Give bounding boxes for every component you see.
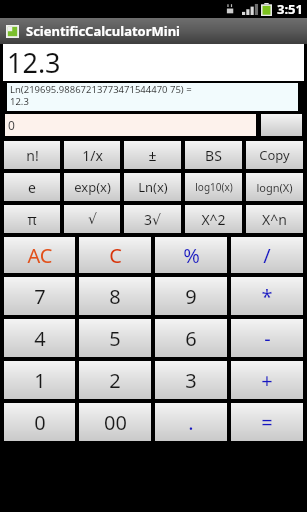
button[interactable]: + [231, 361, 303, 399]
button[interactable]: 00 [79, 403, 151, 441]
staticText: log10(x) [195, 180, 233, 194]
staticText: 1/x [82, 146, 103, 165]
button[interactable]: - [231, 319, 303, 357]
staticText: √ [88, 211, 97, 227]
staticText: 6 [185, 325, 197, 352]
button[interactable]: Ln(x) [124, 173, 181, 201]
staticText: n! [26, 146, 39, 165]
staticText: . [188, 409, 194, 436]
staticText: BS [205, 146, 222, 165]
button[interactable]: 0 [5, 114, 256, 136]
button[interactable]: 0 [4, 403, 75, 441]
button[interactable]: e [4, 173, 60, 201]
button[interactable]: * [231, 277, 303, 315]
button[interactable]: X^n [246, 205, 303, 233]
button[interactable]: 4 [4, 319, 75, 357]
button[interactable]: = [231, 403, 303, 441]
staticText: e [28, 178, 36, 197]
staticText: Ln(219695.98867213773471544470 75) = 12.… [10, 83, 192, 108]
button[interactable]: 7 [4, 277, 75, 315]
button[interactable]: logn(X) [246, 173, 303, 201]
staticText: 3 [185, 367, 197, 394]
staticText: C [109, 242, 122, 269]
staticText: 1 [34, 367, 46, 394]
staticText: ± [148, 146, 157, 165]
button[interactable]: / [231, 237, 303, 273]
button[interactable]: Copy [246, 141, 303, 169]
button[interactable]: 5 [79, 319, 151, 357]
staticText: 5 [109, 325, 121, 352]
button[interactable]: 6 [155, 319, 227, 357]
button[interactable]: ± [124, 141, 181, 169]
staticText: 0 [8, 117, 15, 133]
staticText: logn(X) [256, 180, 293, 195]
button[interactable]: exp(x) [64, 173, 120, 201]
button[interactable]: π [4, 205, 60, 233]
button[interactable]: 8 [79, 277, 151, 315]
staticText: exp(x) [74, 178, 111, 196]
staticText: 3√ [144, 210, 161, 229]
button[interactable]: Enter [261, 114, 302, 136]
button[interactable]: √ [64, 205, 120, 233]
staticText: AC [27, 242, 53, 269]
button[interactable]: 2 [79, 361, 151, 399]
staticText: / [263, 242, 271, 269]
button[interactable]: % [155, 237, 227, 273]
staticText: ScientificCalculatorMini [26, 22, 180, 40]
button[interactable]: 3 [155, 361, 227, 399]
button[interactable]: log10(x) [185, 173, 242, 201]
button[interactable]: 1/x [64, 141, 120, 169]
staticText: 4 [34, 325, 46, 352]
staticText: % [183, 242, 200, 269]
button[interactable]: 3√ [124, 205, 181, 233]
staticText: = [261, 409, 273, 436]
staticText: X^2 [201, 210, 226, 229]
button[interactable]: 1 [4, 361, 75, 399]
button[interactable]: C [79, 237, 151, 273]
staticText: 3:51 [277, 0, 303, 18]
staticText: 9 [185, 283, 197, 310]
staticText: - [264, 325, 271, 352]
staticText: 7 [34, 283, 46, 310]
staticText: 2 [109, 367, 121, 394]
staticText: Ln(x) [138, 178, 168, 196]
staticText: 12.3 [7, 44, 61, 81]
button[interactable]: . [155, 403, 227, 441]
button[interactable]: BS [185, 141, 242, 169]
staticText: π [27, 210, 37, 229]
staticText: 0 [34, 409, 46, 436]
staticText: * [261, 283, 273, 310]
staticText: 8 [109, 283, 121, 310]
button[interactable]: X^2 [185, 205, 242, 233]
staticText: Copy [259, 146, 290, 164]
staticText: + [261, 367, 273, 394]
button[interactable]: AC [4, 237, 75, 273]
staticText: 00 [104, 409, 127, 436]
button[interactable]: n! [4, 141, 60, 169]
button[interactable]: 9 [155, 277, 227, 315]
staticText: X^n [262, 210, 287, 229]
